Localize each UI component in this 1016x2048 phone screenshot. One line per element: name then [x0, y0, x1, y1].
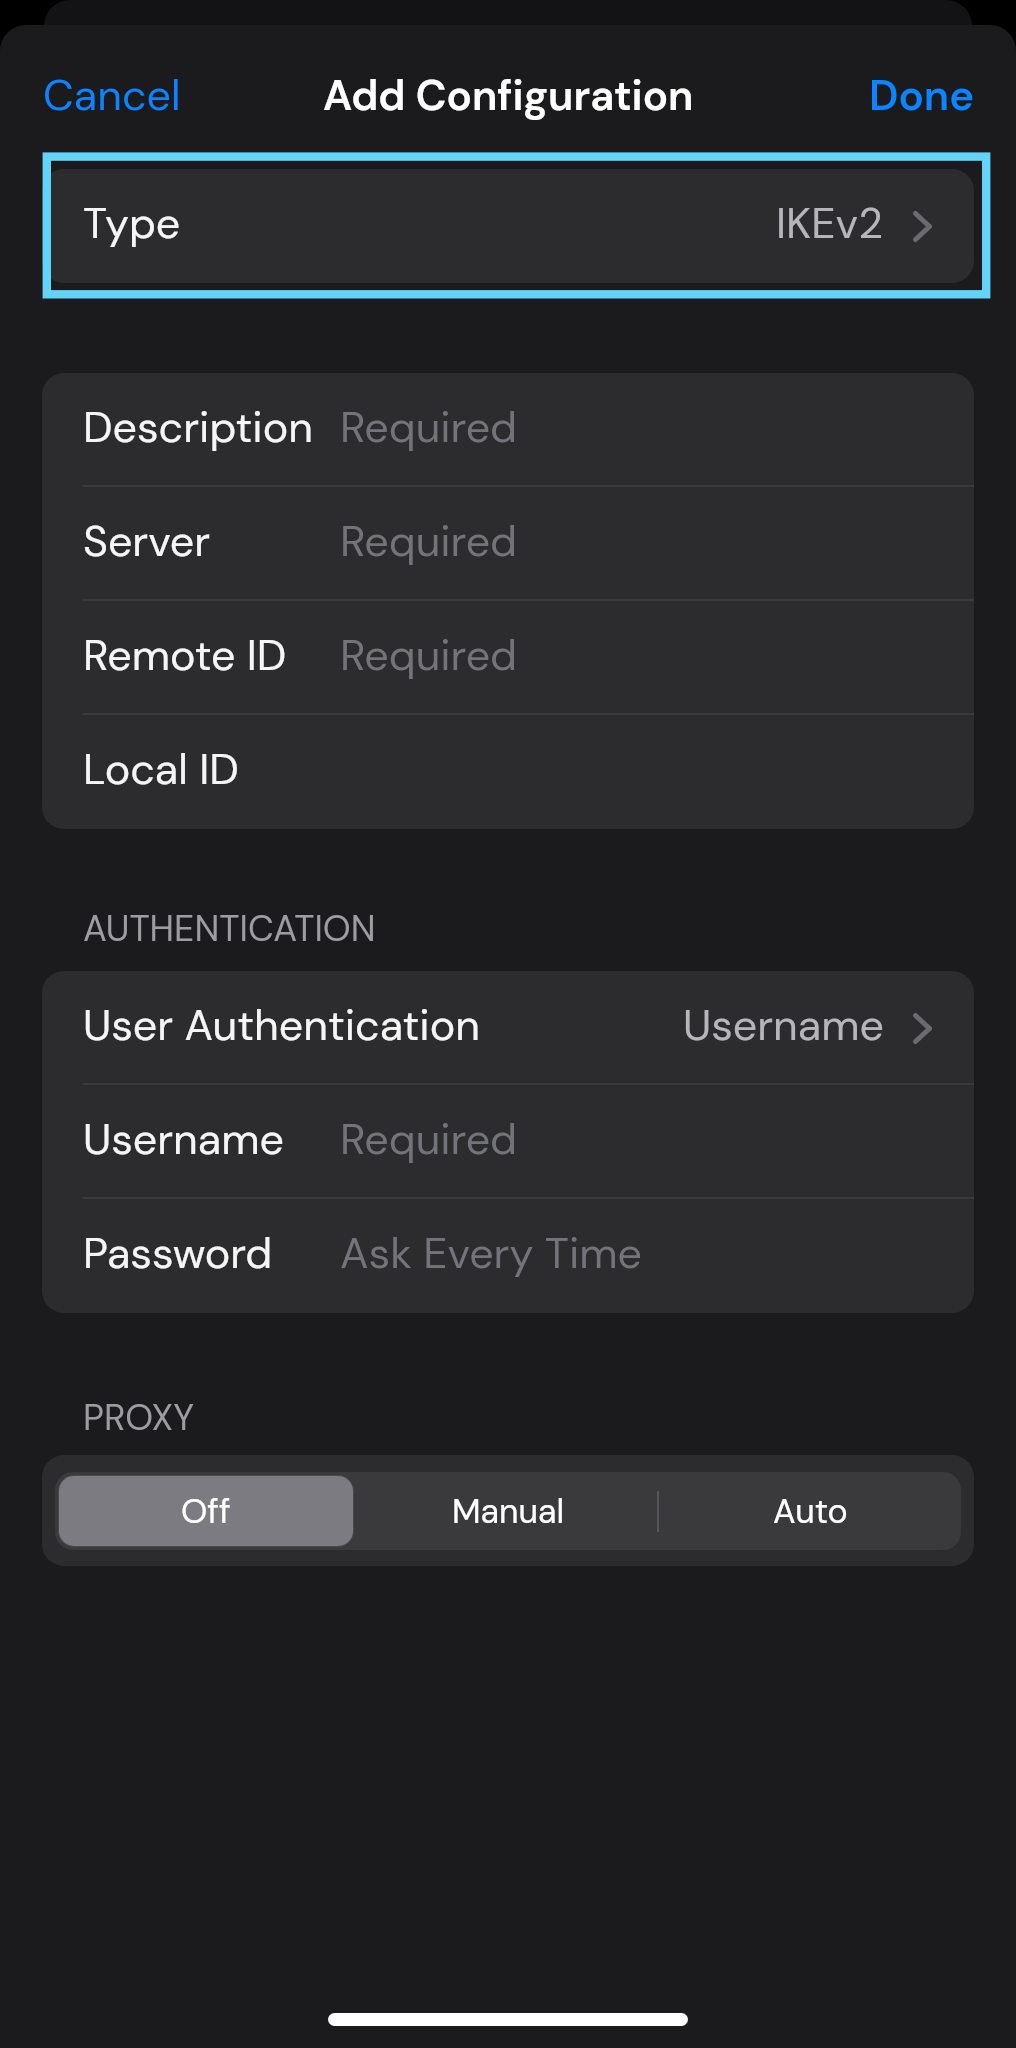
staticText: PROXY: [83, 1394, 195, 1441]
staticText: Manual: [452, 1489, 565, 1533]
staticText: Required: [340, 627, 518, 683]
staticText: IKEv2: [776, 195, 884, 251]
staticText: Type: [83, 195, 181, 251]
staticText: Server: [83, 513, 211, 569]
staticText: Ask Every Time: [340, 1225, 642, 1281]
button[interactable]: Password: [42, 1199, 974, 1313]
button[interactable]: Cancel: [0, 49, 211, 141]
staticText: Cancel: [43, 67, 181, 123]
staticText: Username: [83, 1111, 284, 1167]
button[interactable]: Manual: [357, 1472, 659, 1550]
button[interactable]: Type, IKEv2: [42, 169, 974, 283]
button[interactable]: Server: [42, 487, 974, 601]
staticText: Local ID: [83, 741, 239, 797]
staticText: Password: [83, 1225, 273, 1281]
button[interactable]: Description: [42, 373, 974, 487]
staticText: User Authentication: [83, 997, 480, 1053]
staticText: Required: [340, 1111, 518, 1167]
button[interactable]: Local ID: [42, 715, 974, 829]
button[interactable]: Username: [42, 1085, 974, 1199]
staticText: Remote ID: [83, 627, 287, 683]
staticText: AUTHENTICATION: [83, 905, 376, 952]
button[interactable]: Remote ID: [42, 601, 974, 715]
staticText: Username: [683, 997, 884, 1053]
button[interactable]: Off: [59, 1476, 353, 1546]
staticText: Auto: [773, 1489, 848, 1533]
staticText: Required: [340, 513, 518, 569]
button[interactable]: User Authentication, Username: [42, 971, 974, 1085]
staticText: Off: [181, 1489, 231, 1533]
button[interactable]: Done: [839, 50, 1016, 141]
staticText: Done: [869, 68, 975, 123]
button[interactable]: Auto: [659, 1472, 961, 1550]
staticText: Description: [83, 399, 313, 455]
staticText: Required: [340, 399, 518, 455]
staticText: Add Configuration: [323, 68, 694, 123]
